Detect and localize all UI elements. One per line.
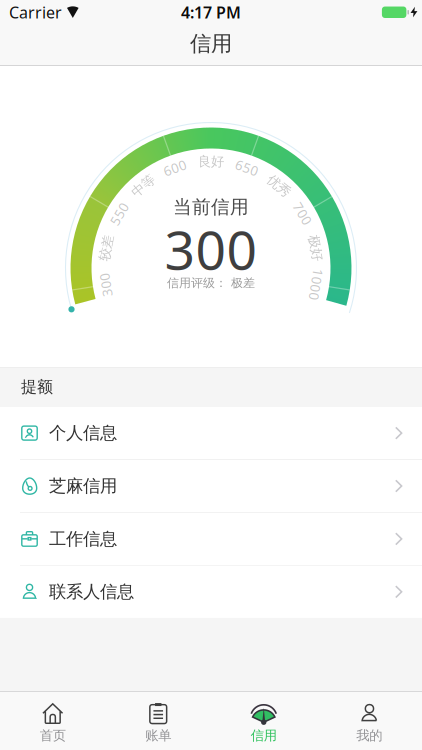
staticText: 700: [291, 205, 315, 223]
staticText: 联系人信息: [49, 581, 134, 602]
staticText: 优秀: [266, 178, 292, 194]
button[interactable]: 芝麻信用: [0, 460, 422, 512]
staticText: 550: [107, 205, 131, 223]
staticText: 信用评级： 极差: [167, 276, 255, 290]
staticText: 首页: [40, 727, 66, 744]
staticText: 1000: [300, 276, 332, 293]
staticText: 极好: [303, 240, 329, 256]
staticText: 信用: [251, 727, 277, 744]
staticText: 账单: [145, 727, 171, 744]
staticText: 信用: [190, 30, 232, 57]
staticText: 良好: [198, 153, 224, 170]
button[interactable]: 联系人信息: [0, 566, 422, 618]
staticText: 工作信息: [49, 528, 117, 550]
staticText: Carrier: [9, 2, 62, 23]
staticText: 当前信用: [173, 195, 249, 218]
button[interactable]: 首页: [0, 692, 105, 750]
staticText: 个人信息: [49, 422, 117, 444]
button[interactable]: 工作信息: [0, 513, 422, 565]
staticText: 4:17 PM: [181, 2, 241, 23]
button[interactable]: 账单: [105, 692, 211, 750]
staticText: 我的: [356, 727, 382, 744]
button[interactable]: 我的: [316, 692, 422, 750]
staticText: 芝麻信用: [49, 475, 117, 497]
button[interactable]: 个人信息: [0, 407, 422, 459]
staticText: 650: [235, 159, 259, 177]
staticText: 600: [163, 159, 187, 177]
staticText: 300: [94, 276, 118, 293]
button[interactable]: 信用: [211, 692, 316, 750]
staticText: 较差: [93, 240, 119, 256]
staticText: 提额: [21, 377, 53, 397]
staticText: 中等: [130, 178, 156, 194]
staticText: 300: [164, 214, 257, 284]
